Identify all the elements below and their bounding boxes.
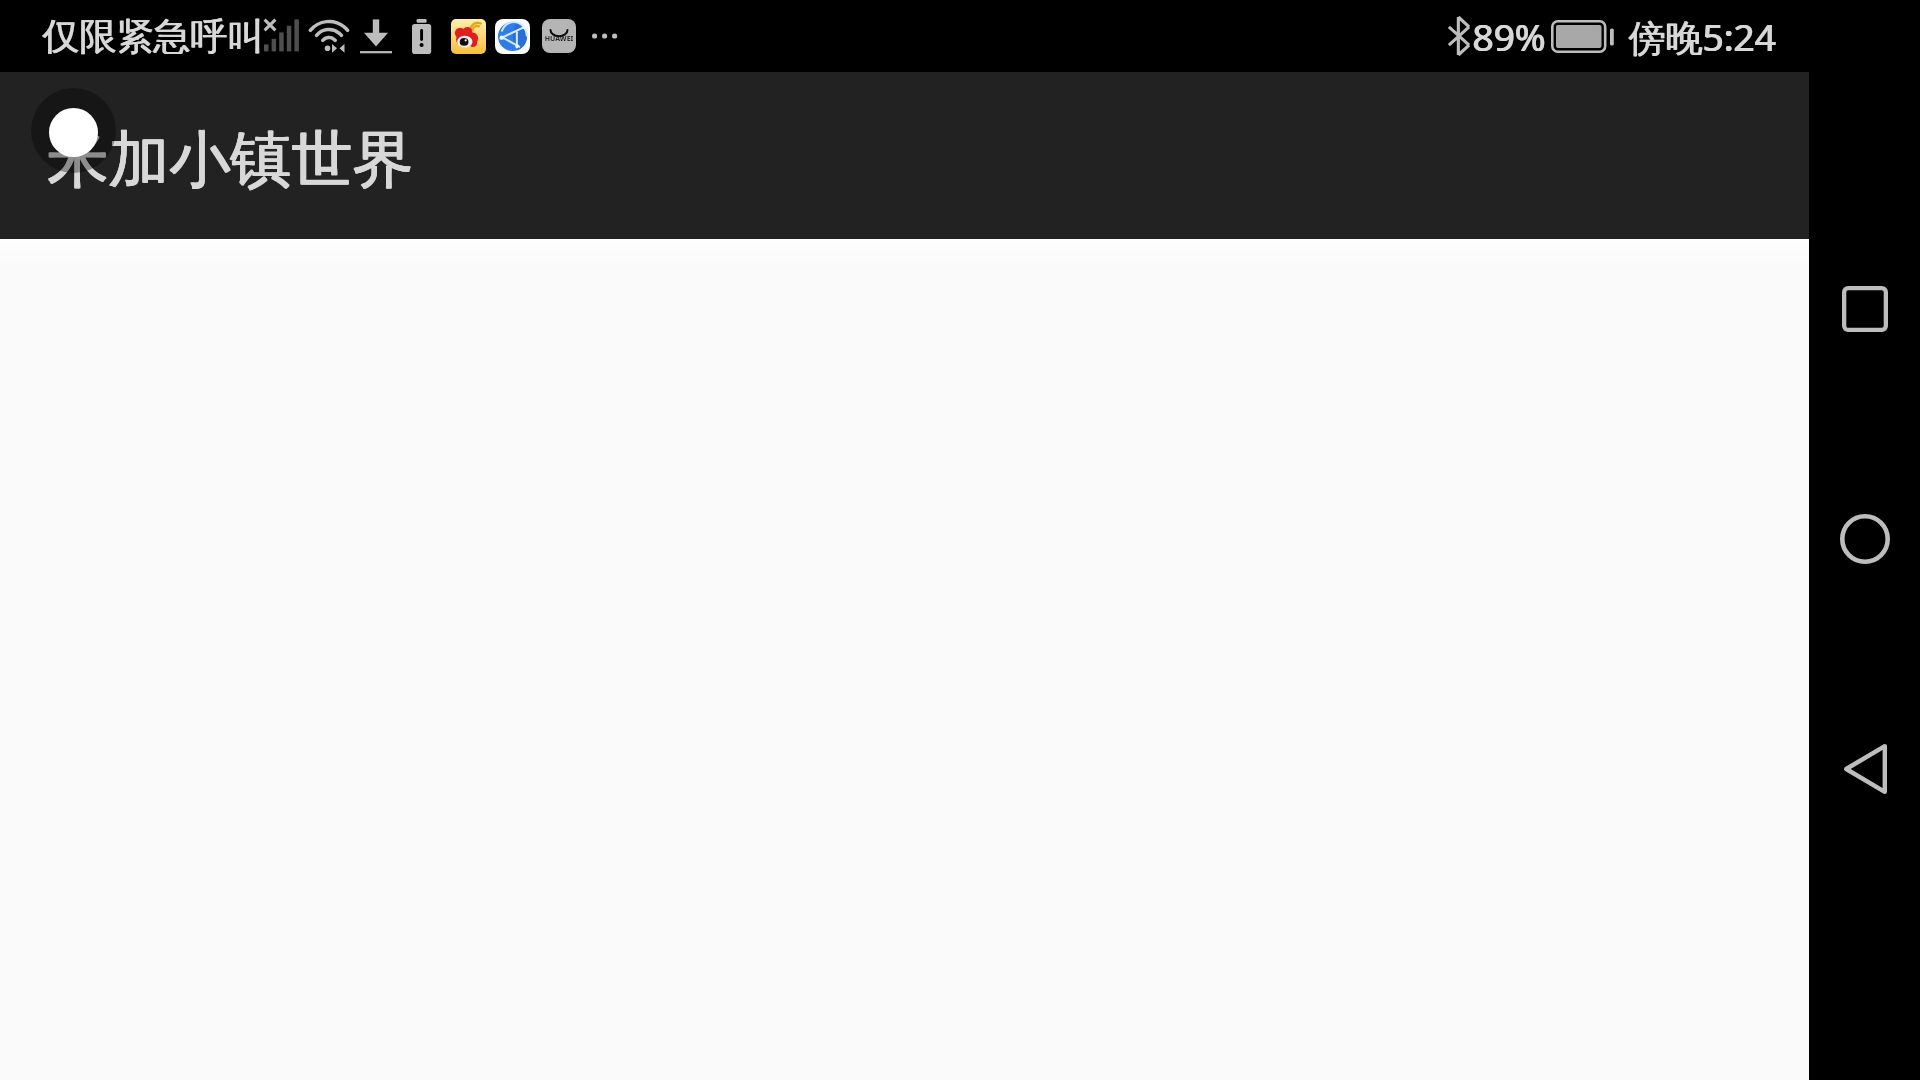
staticText: 米加小镇世界: [47, 121, 413, 198]
staticText: 米加小镇世界: [48, 122, 414, 199]
staticText: 傍晚5:24: [1628, 11, 1776, 62]
staticText: 仅限紧急呼叫: [43, 13, 265, 60]
button[interactable]: Loading: [31, 88, 116, 173]
button[interactable]: Recents: [1811, 255, 1919, 363]
staticText: 仅限紧急呼叫: [42, 13, 264, 60]
staticText: 傍晚5:24: [1629, 11, 1777, 62]
staticText: 米加小镇世界: [48, 121, 414, 198]
button[interactable]: Home: [1811, 485, 1919, 593]
staticText: 米加小镇世界: [47, 122, 413, 199]
staticText: HUAWEI: [542, 34, 576, 44]
button[interactable]: Back: [1811, 715, 1919, 823]
staticText: 89%: [1473, 11, 1547, 61]
staticText: 89%: [1472, 11, 1546, 61]
